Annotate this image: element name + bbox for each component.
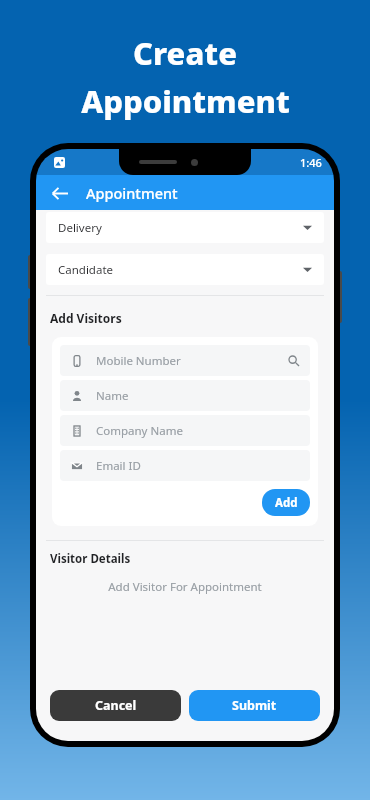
button[interactable]: Back xyxy=(44,178,74,208)
staticText: 1:46 xyxy=(300,155,322,170)
staticText: Delivery xyxy=(58,220,102,236)
button[interactable]: Email ID xyxy=(60,450,310,481)
button[interactable]: Company Name xyxy=(60,415,310,446)
staticText: Email ID xyxy=(96,458,141,474)
staticText: Add Visitors xyxy=(50,310,122,326)
button[interactable]: Mobile Number xyxy=(60,345,310,376)
staticText: Add xyxy=(275,495,298,511)
staticText: Name xyxy=(96,388,129,404)
staticText: Submit xyxy=(232,697,277,714)
staticText: Mobile Number xyxy=(96,353,181,369)
staticText: Company Name xyxy=(96,423,183,439)
staticText: Cancel xyxy=(95,697,137,714)
button[interactable]: Delivery xyxy=(46,212,324,243)
staticText: Appointment xyxy=(86,183,178,203)
button[interactable]: Cancel xyxy=(50,690,181,721)
staticText: Create xyxy=(133,32,237,74)
staticText: Appointment xyxy=(81,80,290,122)
button[interactable]: Add xyxy=(262,489,310,516)
staticText: Candidate xyxy=(58,262,114,278)
staticText: Visitor Details xyxy=(50,551,131,567)
button[interactable]: Submit xyxy=(189,690,320,721)
button[interactable]: Name xyxy=(60,380,310,411)
staticText: Add Visitor For Appointment xyxy=(36,579,334,595)
button[interactable]: Candidate xyxy=(46,254,324,285)
